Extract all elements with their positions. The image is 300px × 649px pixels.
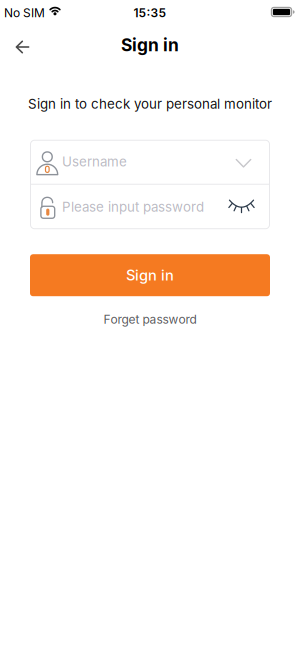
button[interactable]: Show password [226,198,270,216]
staticText: Sign in [121,35,179,55]
staticText: Please input password [62,199,204,215]
staticText: Sign in [126,267,174,284]
staticText: 15:35 [133,6,166,20]
button[interactable]: Forget password [103,312,196,326]
staticText: No SIM [4,6,45,20]
button[interactable]: Back [0,38,30,51]
button[interactable]: Sign in [30,254,270,296]
staticText: Sign in to check your personal monitor [28,96,272,112]
button[interactable]: Choose account [235,157,270,166]
staticText: Username [62,154,127,170]
staticText: Forget password [103,312,196,326]
